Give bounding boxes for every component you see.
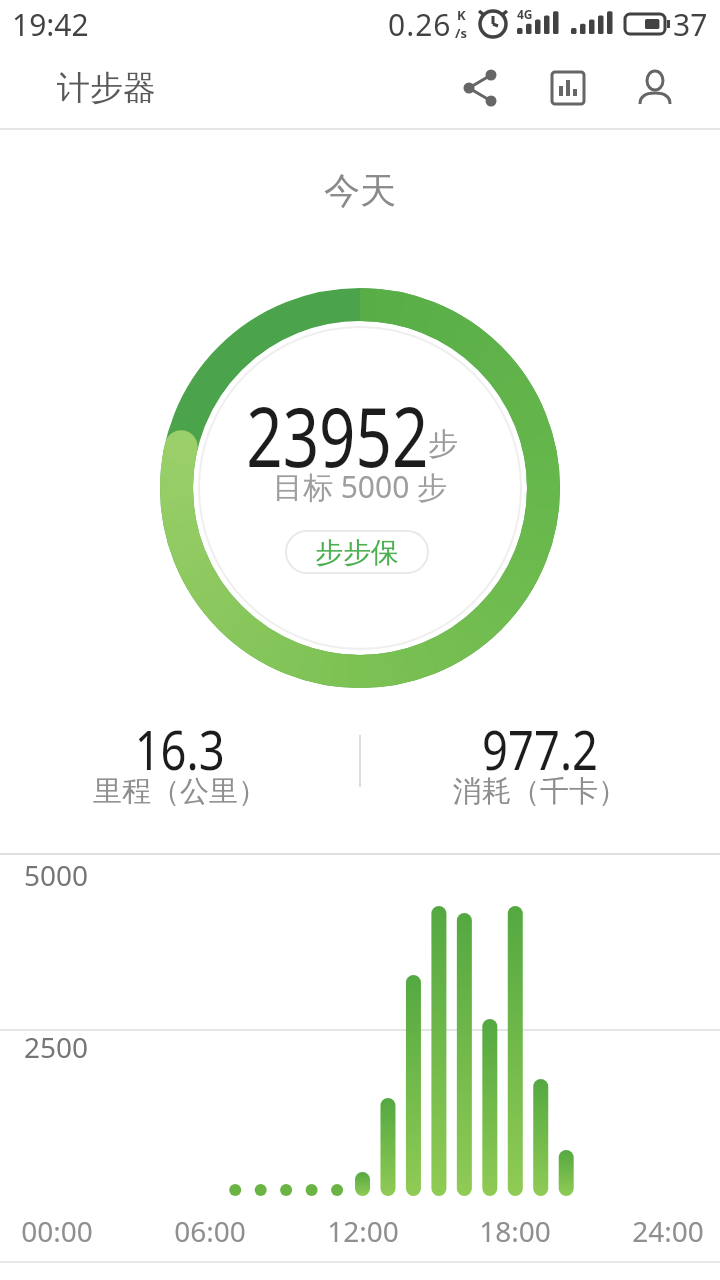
staticText: 16.3 [135,712,225,786]
staticText: 计步器 [57,67,156,109]
staticText: 06:00 [170,1212,250,1250]
staticText: 0.26 [388,4,452,45]
button[interactable]: 步步保 [285,530,429,574]
staticText: K [457,6,466,24]
staticText: /s [455,24,467,42]
staticText: 00:00 [17,1212,97,1250]
staticText: 12:00 [323,1212,403,1250]
staticText: 消耗（千卡） [360,773,720,810]
button[interactable] [453,60,509,116]
staticText: 今天 [0,168,720,213]
staticText: 步步保 [315,535,399,570]
staticText: 目标 5000 步 [0,466,720,507]
staticText: 977.2 [482,712,599,786]
staticText: 19:42 [12,4,89,45]
staticText: 23952 [246,379,429,491]
staticText: 18:00 [475,1212,555,1250]
staticText: 2500 [24,1028,89,1066]
staticText: 37 [673,4,708,45]
staticText: 5000 [24,856,89,894]
button[interactable] [627,60,683,116]
staticText: 步 [428,425,458,463]
button[interactable] [540,60,596,116]
staticText: 4G [517,6,533,22]
staticText: 里程（公里） [0,773,360,810]
staticText: 24:00 [628,1212,708,1250]
